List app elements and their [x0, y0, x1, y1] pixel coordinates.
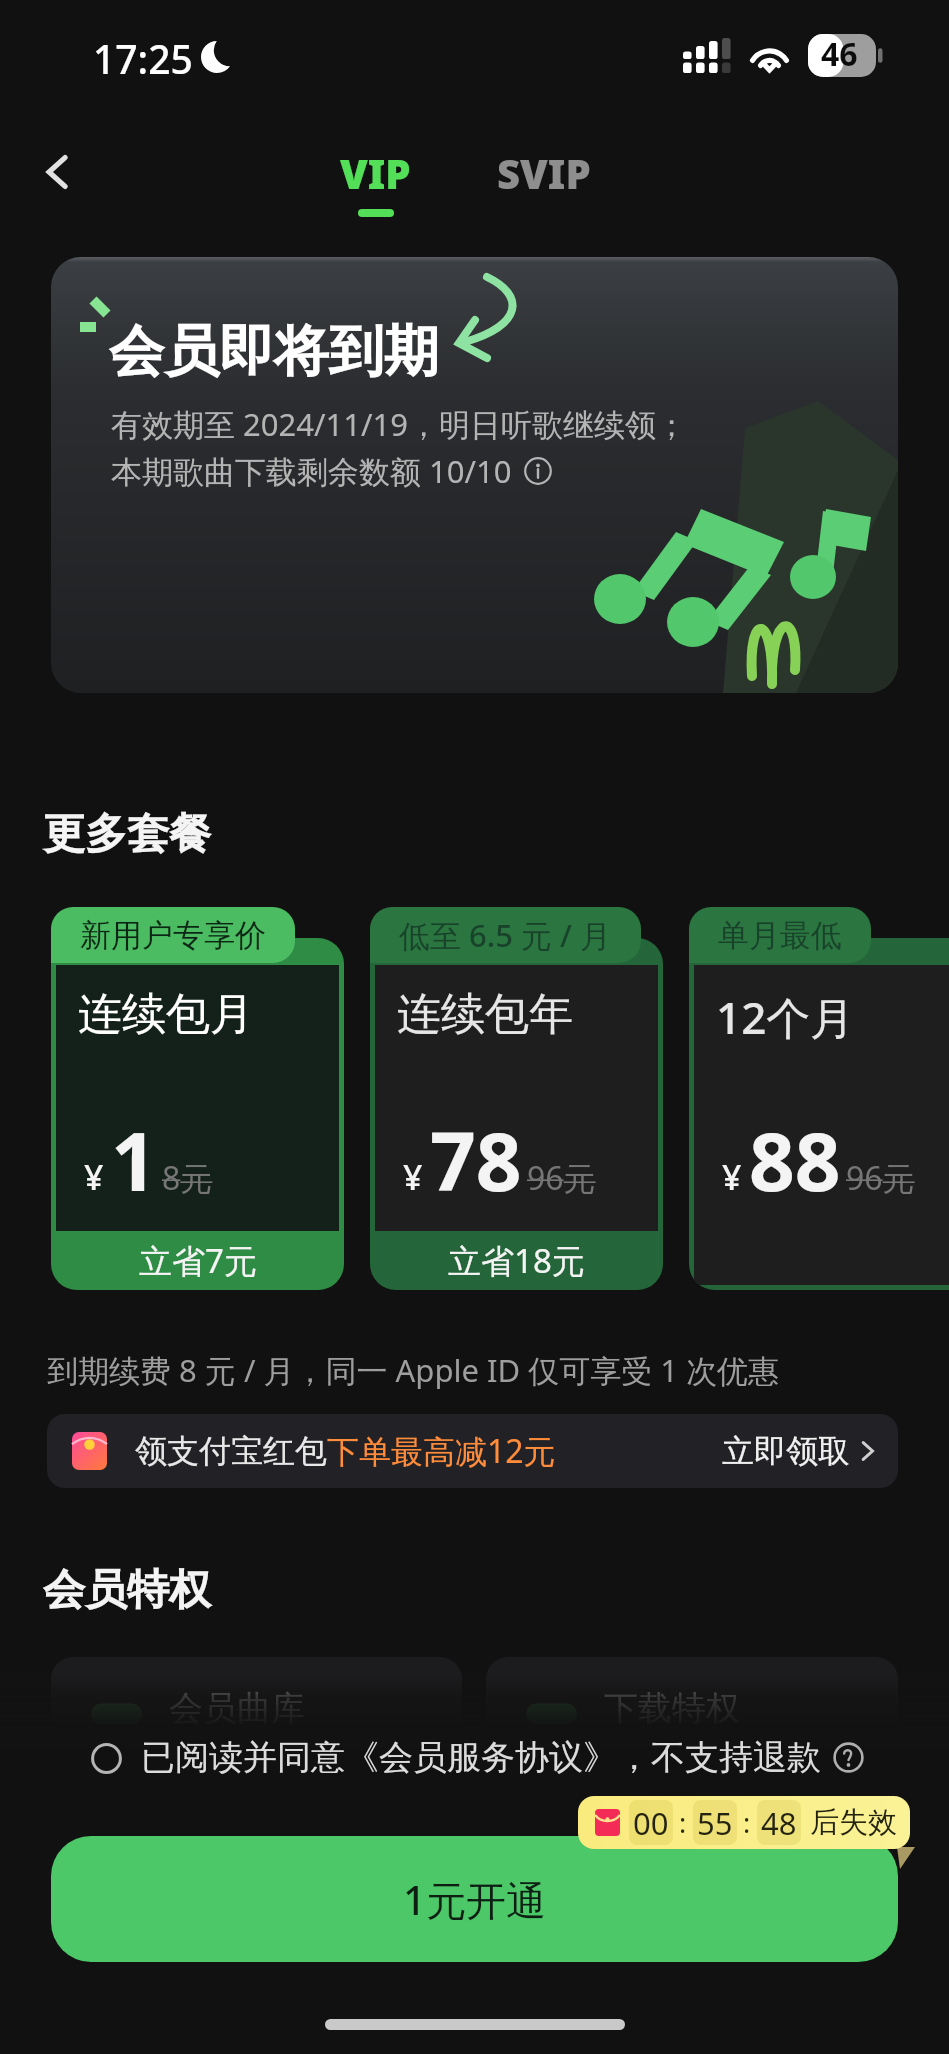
- staticText: 更多套餐: [43, 808, 211, 861]
- staticText: 会员即将到期: [109, 317, 439, 386]
- button[interactable]: SVIP: [497, 146, 591, 200]
- button[interactable]: 连续包年: [370, 907, 663, 1290]
- staticText: 连续包月: [78, 987, 254, 1042]
- button[interactable]: Agree: [85, 1737, 127, 1779]
- staticText: ¥: [403, 1154, 423, 1200]
- staticText: 78: [430, 1105, 522, 1214]
- button[interactable]: 领支付宝红包: [47, 1414, 898, 1488]
- staticText: ¥: [84, 1154, 104, 1200]
- button[interactable]: 连续包月: [51, 907, 344, 1290]
- button[interactable]: VIP: [340, 146, 411, 217]
- button[interactable]: Back: [32, 146, 84, 198]
- staticText: 新用户专享价: [80, 916, 266, 955]
- staticText: 会员特权: [43, 1564, 211, 1617]
- staticText: :: [743, 1804, 751, 1841]
- staticText: 1元开通: [403, 1872, 546, 1927]
- staticText: 后失效: [810, 1804, 897, 1841]
- staticText: 48: [761, 1802, 797, 1844]
- button[interactable]: 下载特权: [486, 1657, 898, 1817]
- staticText: 本期歌曲下载剩余数额 10/10: [111, 450, 512, 492]
- button[interactable]: 会员即将到期: [51, 257, 898, 693]
- staticText: 立省7元: [139, 1238, 257, 1283]
- staticText: 低至 6.5 元 / 月: [399, 914, 612, 956]
- staticText: 已阅读并同意《会员服务协议》，不支持退款: [141, 1736, 821, 1779]
- staticText: 96元: [527, 1156, 596, 1200]
- staticText: 88: [749, 1105, 841, 1214]
- staticText: 96元: [846, 1156, 915, 1200]
- button[interactable]: 12个月: [689, 907, 949, 1290]
- staticText: 12个月: [716, 987, 855, 1047]
- staticText: 00: [633, 1802, 669, 1844]
- staticText: :: [679, 1804, 687, 1841]
- staticText: 17:25: [93, 32, 193, 85]
- staticText: 单月最低: [718, 916, 842, 955]
- staticText: 下单最高减12元: [327, 1429, 556, 1473]
- staticText: 连续包年: [397, 987, 573, 1042]
- staticText: 有效期至 2024/11/19，明日听歌继续领；: [111, 403, 687, 445]
- staticText: 会员曲库: [169, 1687, 305, 1730]
- staticText: 领支付宝红包: [135, 1431, 327, 1471]
- staticText: 1: [111, 1105, 157, 1214]
- staticText: 到期续费 8 元 / 月，同一 Apple ID 仅可享受 1 次优惠: [47, 1349, 780, 1391]
- staticText: 下载特权: [604, 1687, 740, 1730]
- staticText: 立即领取: [722, 1431, 850, 1471]
- button[interactable]: 会员曲库: [51, 1657, 462, 1817]
- staticText: ¥: [722, 1154, 742, 1200]
- staticText: 46: [821, 32, 858, 76]
- staticText: 8元: [162, 1156, 213, 1200]
- staticText: VIP: [340, 146, 411, 200]
- button[interactable]: 1元开通: [51, 1836, 898, 1962]
- staticText: 55: [697, 1802, 733, 1844]
- staticText: SVIP: [497, 146, 591, 200]
- staticText: 立省18元: [448, 1238, 585, 1283]
